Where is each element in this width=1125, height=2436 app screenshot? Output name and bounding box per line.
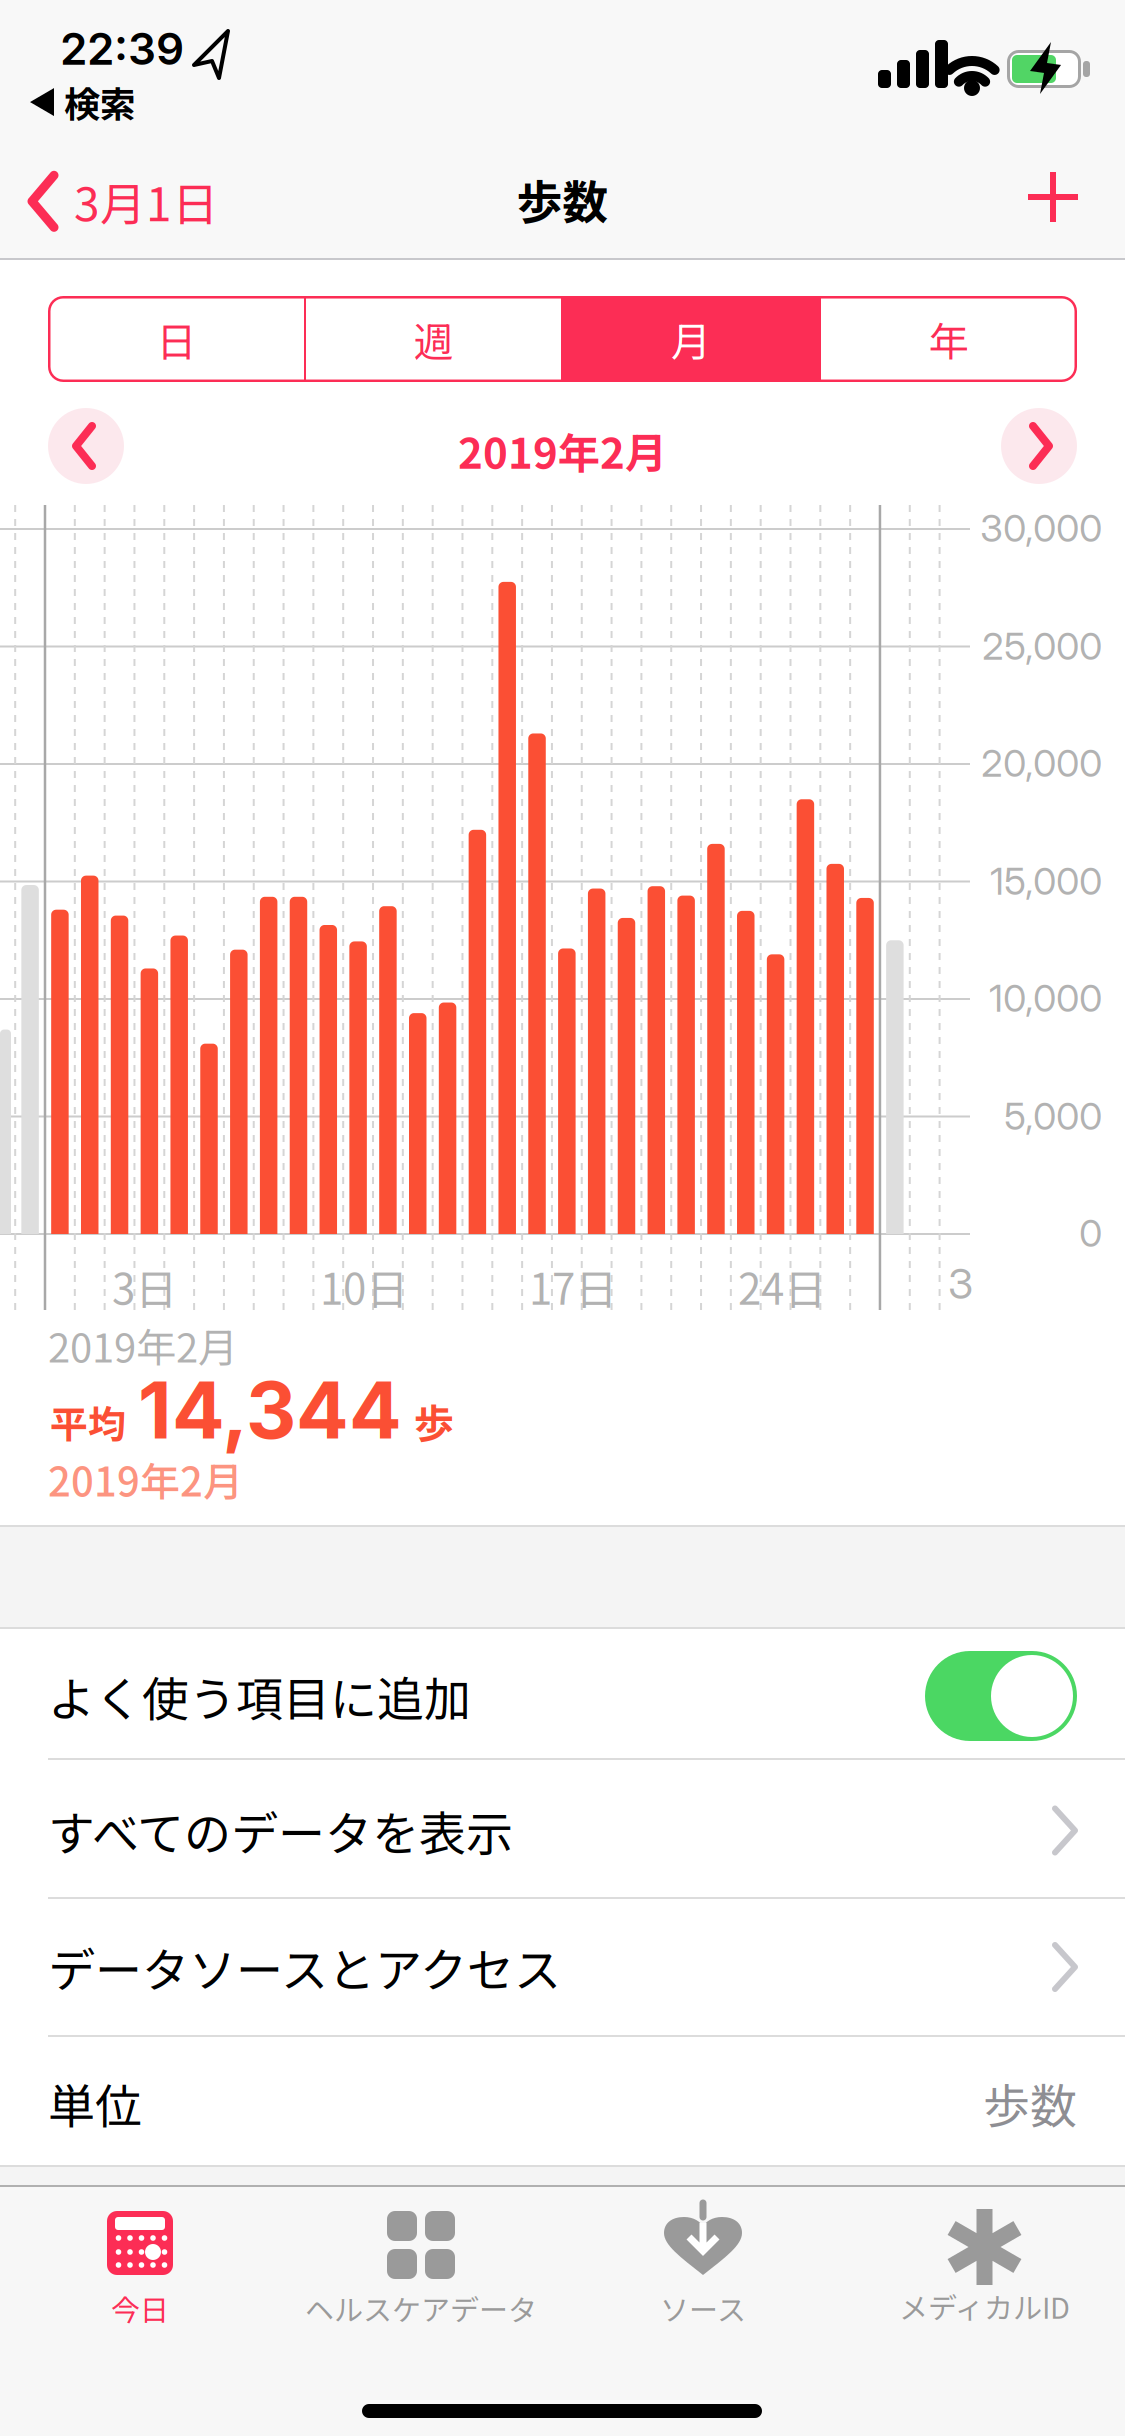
staticText: 20,000 [981,740,1102,786]
staticText: ソース [660,2287,746,2329]
staticText: 週 [413,310,453,368]
staticText: 15,000 [990,858,1102,904]
staticText: 平均 [50,1394,126,1449]
staticText: 歩数 [516,166,608,233]
staticText: 2019年2月 [48,1316,238,1374]
staticText: メディカルID [899,2285,1070,2327]
button[interactable]: 3月1日 [28,168,218,235]
button[interactable]: メディカルID [844,2209,1125,2327]
staticText: 3 [948,1258,973,1309]
staticText: 5,000 [1004,1093,1102,1139]
staticText: よく使う項目に追加 [48,1662,471,1730]
staticText: 歩 [414,1392,454,1450]
staticText: 2019年2月 [458,420,667,481]
staticText: 0 [1079,1210,1102,1256]
button[interactable]: すべてのデータを表示 [0,1764,1125,1897]
staticText: 25,000 [982,623,1102,669]
button[interactable]: データソースとアクセス [0,1899,1125,2035]
staticText: 日 [156,310,196,368]
button[interactable]: 今日 [0,2211,280,2329]
staticText: 10,000 [989,975,1102,1021]
staticText: 今日 [111,2287,169,2329]
staticText: 3日 [112,1256,177,1317]
staticText: ヘルスケアデータ [305,2287,537,2329]
staticText: 30,000 [980,505,1102,551]
button[interactable]: ヘルスケアデータ [280,2211,562,2329]
staticText: 3月1日 [74,168,218,235]
staticText: 検索 [64,76,136,128]
button[interactable]: ソース [562,2211,844,2329]
staticText: 歩数 [983,2069,1077,2137]
button[interactable]: 日 [48,296,305,382]
staticText: 単位 [48,2069,142,2137]
staticText: 2019年2月 [48,1450,243,1508]
button[interactable]: 前の月 [48,408,124,484]
button[interactable]: 週 [305,296,562,382]
staticText: 14,344 [138,1363,402,1457]
button[interactable]: 年 [820,296,1077,382]
staticText: 22:39 [60,22,184,75]
staticText: 年 [928,310,968,368]
button[interactable]: 検索 [30,76,136,128]
staticText: すべてのデータを表示 [48,1796,513,1865]
button[interactable]: 追加 [1028,172,1078,222]
staticText: 月 [671,310,711,368]
staticText: 24日 [738,1256,826,1317]
staticText: 10日 [320,1256,408,1317]
staticText: 17日 [529,1256,617,1317]
button[interactable]: 月 [562,296,820,382]
staticText: データソースとアクセス [48,1933,561,2001]
button[interactable]: よく使う項目に追加 [925,1651,1077,1741]
button[interactable]: 単位 [0,2041,1125,2165]
button[interactable]: 次の月 [1001,408,1077,484]
